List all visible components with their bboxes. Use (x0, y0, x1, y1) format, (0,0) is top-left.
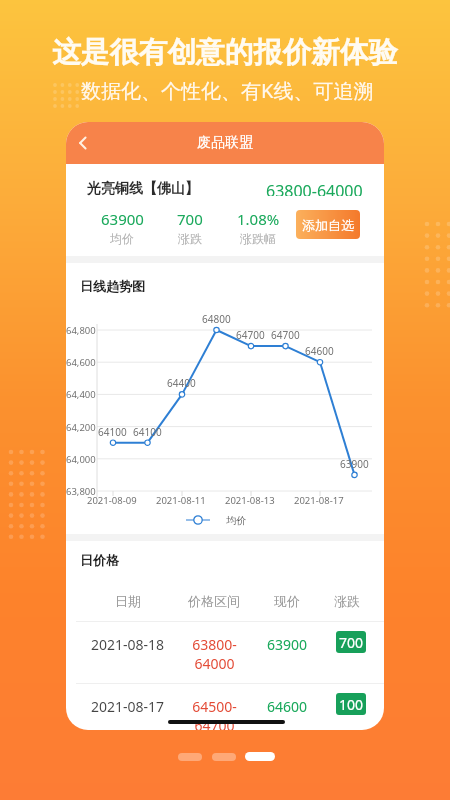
staticText: 63900 (101, 209, 144, 229)
staticText: 64100 (133, 425, 162, 439)
staticText: 64600 (267, 697, 308, 716)
staticText: 日期 (115, 593, 141, 609)
staticText: 63800- 64000 (192, 635, 237, 673)
staticText: 700 (177, 209, 203, 229)
staticText: 日线趋势图 (80, 278, 145, 294)
staticText: 64400 (167, 376, 196, 390)
staticText: 现价 (274, 593, 300, 609)
staticText: 价格区间 (188, 593, 240, 609)
staticText: 涨跌 (178, 231, 202, 246)
staticText: 这是很有创意的报价新体验 (52, 34, 398, 70)
staticText: 700 (339, 633, 364, 652)
staticText: 1.08% (237, 209, 280, 229)
staticText: 100 (339, 695, 364, 714)
staticText: 光亮铜线【佛山】 (87, 180, 199, 196)
staticText: 64500- 64700 (192, 697, 237, 730)
staticText: 均价 (226, 514, 246, 527)
staticText: 均价 (110, 231, 134, 246)
staticText: 2021-08-13 (225, 494, 275, 507)
staticText: 数据化、个性化、有K线、可追溯 (81, 77, 374, 104)
staticText: 2021-08-11 (156, 494, 206, 507)
staticText: 日价格 (80, 552, 119, 568)
staticText: 64,200 (66, 421, 96, 434)
staticText: 2021-08-18 (91, 635, 165, 654)
button[interactable]: 2021-08-17 (66, 683, 384, 730)
staticText: 2021-08-17 (91, 697, 165, 716)
button[interactable]: 添加自选 (296, 210, 360, 239)
staticText: 63900 (267, 635, 308, 654)
staticText: 64,600 (66, 356, 96, 369)
staticText: 64,000 (66, 453, 96, 466)
staticText: 废品联盟 (197, 134, 253, 152)
staticText: 添加自选 (302, 217, 354, 233)
staticText: 2021-08-09 (87, 494, 137, 507)
staticText: 64700 (236, 328, 265, 342)
button[interactable]: Back (66, 126, 100, 160)
staticText: 63800-64000 (266, 180, 363, 196)
staticText: 63900 (340, 457, 369, 471)
staticText: 涨跌幅 (240, 231, 276, 246)
button[interactable]: 2021-08-18 (66, 621, 384, 683)
staticText: 64,400 (66, 388, 96, 401)
staticText: 2021-08-17 (294, 494, 344, 507)
staticText: 64800 (202, 312, 231, 326)
staticText: 63,800 (66, 485, 96, 498)
staticText: 64600 (305, 344, 334, 358)
staticText: 64,800 (66, 324, 96, 337)
staticText: 涨跌 (334, 593, 360, 609)
staticText: 64100 (98, 425, 127, 439)
staticText: 64700 (271, 328, 300, 342)
